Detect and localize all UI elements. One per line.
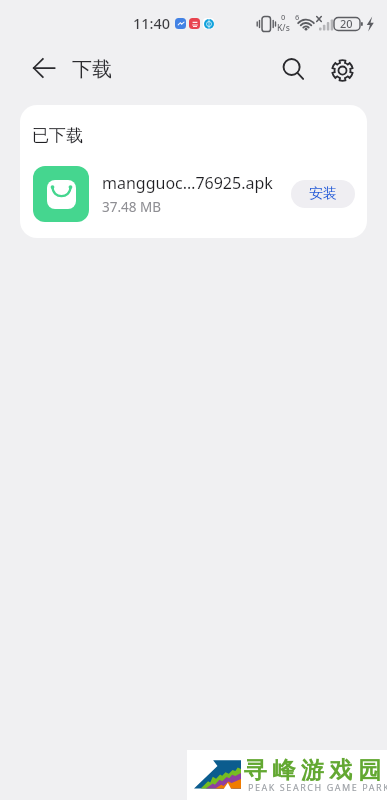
staticText: 6 <box>295 12 300 22</box>
staticText: 11:40 <box>133 13 171 33</box>
staticText: 寻峰游戏园 <box>241 756 384 785</box>
staticText: PEAK SEARCH GAME PARK <box>248 781 387 793</box>
staticText: 20 <box>340 16 353 31</box>
button[interactable]: Back <box>22 46 65 89</box>
staticText: 0 <box>281 12 286 22</box>
staticText: 已下载 <box>32 125 83 146</box>
button[interactable]: mangguoc…76925.apk <box>20 163 367 225</box>
button[interactable]: Settings <box>320 48 364 92</box>
staticText: 下载 <box>72 57 112 82</box>
button[interactable]: Search <box>272 48 316 92</box>
staticText: 安装 <box>309 185 337 203</box>
staticText: mangguoc…76925.apk <box>102 172 273 194</box>
staticText: 37.48 MB <box>102 198 162 216</box>
button[interactable]: 安装 <box>291 180 355 208</box>
staticText: K/s <box>277 22 290 34</box>
